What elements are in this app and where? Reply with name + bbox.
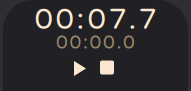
staticText: 00:00.0 <box>56 31 135 54</box>
button[interactable]: Start <box>75 61 87 76</box>
staticText: 00:07.7 <box>34 2 156 37</box>
button[interactable]: Stop <box>100 61 114 75</box>
